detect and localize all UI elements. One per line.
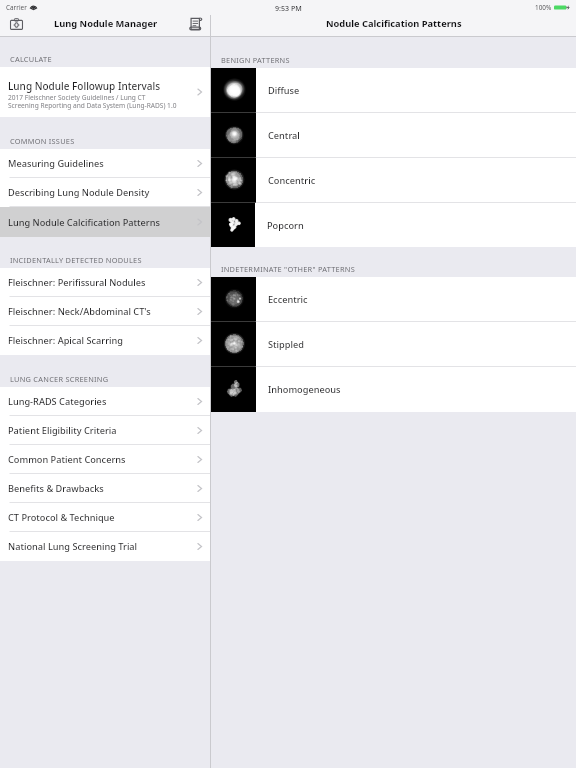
staticText: Fleischner: Neck/Abdominal CT's <box>8 305 151 318</box>
staticText: 9:53 PM <box>275 3 302 13</box>
staticText: CALCULATE <box>10 54 52 64</box>
button[interactable]: Fleischner: Neck/Abdominal CT's <box>0 297 211 326</box>
staticText: Lung Nodule Followup Intervals <box>8 79 161 93</box>
button[interactable]: Measuring Guidelines <box>0 149 211 178</box>
button[interactable]: Benefits & Drawbacks <box>0 474 211 503</box>
staticText: CT Protocol & Technique <box>8 511 115 524</box>
button[interactable]: Eccentric <box>211 277 576 322</box>
staticText: 100% <box>535 3 552 12</box>
button[interactable]: Patient Eligibility Criteria <box>0 416 211 445</box>
button[interactable]: Concentric <box>211 158 576 203</box>
button[interactable]: Reference documents <box>182 15 208 33</box>
staticText: Describing Lung Nodule Density <box>8 186 150 199</box>
button[interactable]: Lung-RADS Categories <box>0 387 211 416</box>
staticText: Measuring Guidelines <box>8 157 104 170</box>
button[interactable]: Medical kit <box>3 15 29 32</box>
staticText: 2017 Fleischner Society Guidelines / Lun… <box>8 93 177 110</box>
staticText: Patient Eligibility Criteria <box>8 424 117 437</box>
staticText: Nodule Calcification Patterns <box>326 17 462 30</box>
staticText: Stippled <box>268 338 304 351</box>
button[interactable]: National Lung Screening Trial <box>0 532 211 561</box>
staticText: Common Patient Concerns <box>8 453 126 466</box>
staticText: Lung Nodule Manager <box>54 17 158 30</box>
staticText: Popcorn <box>267 219 304 232</box>
staticText: Concentric <box>268 174 316 187</box>
staticText: Lung-RADS Categories <box>8 395 107 408</box>
staticText: Fleischner: Perifissural Nodules <box>8 276 146 289</box>
staticText: Lung Nodule Calcification Patterns <box>8 216 160 229</box>
button[interactable]: Stippled <box>211 322 576 367</box>
staticText: BENIGN PATTERNS <box>221 55 290 65</box>
staticText: Benefits & Drawbacks <box>8 482 104 495</box>
button[interactable]: Inhomogeneous <box>211 367 576 412</box>
button[interactable]: Lung Nodule Calcification Patterns <box>0 207 211 237</box>
staticText: INDETERMINATE "OTHER" PATTERNS <box>221 264 355 274</box>
staticText: LUNG CANCER SCREENING <box>10 374 109 384</box>
button[interactable]: Diffuse <box>211 68 576 113</box>
staticText: Carrier <box>6 3 27 12</box>
staticText: Diffuse <box>268 84 300 97</box>
button[interactable]: Lung Nodule Followup Intervals <box>0 67 211 117</box>
button[interactable]: Fleischner: Apical Scarring <box>0 326 211 355</box>
button[interactable]: Common Patient Concerns <box>0 445 211 474</box>
staticText: National Lung Screening Trial <box>8 540 138 553</box>
button[interactable]: Fleischner: Perifissural Nodules <box>0 268 211 297</box>
staticText: INCIDENTALLY DETECTED NODULES <box>10 255 142 265</box>
button[interactable]: Describing Lung Nodule Density <box>0 178 211 207</box>
button[interactable]: CT Protocol & Technique <box>0 503 211 532</box>
staticText: Fleischner: Apical Scarring <box>8 334 123 347</box>
button[interactable]: Central <box>211 113 576 158</box>
staticText: COMMON ISSUES <box>10 136 75 146</box>
staticText: Inhomogeneous <box>268 383 341 396</box>
staticText: Central <box>268 129 300 142</box>
staticText: Eccentric <box>268 293 308 306</box>
button[interactable]: Popcorn <box>211 203 576 247</box>
